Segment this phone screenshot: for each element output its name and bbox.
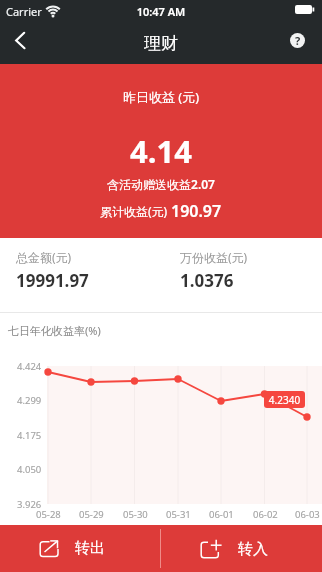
button[interactable] bbox=[0, 22, 44, 64]
staticText: 4.2340 bbox=[264, 393, 305, 407]
staticText: 昨日收益 (元) bbox=[0, 88, 322, 106]
staticText: ? bbox=[295, 33, 301, 48]
staticText: 4.14 bbox=[0, 130, 322, 172]
staticText: 1.0376 bbox=[180, 269, 234, 292]
staticText: 累计收益(元) bbox=[100, 203, 171, 219]
staticText: 10:47 AM bbox=[0, 4, 322, 19]
staticText: 总金额(元) bbox=[16, 249, 72, 265]
staticText: 190.97 bbox=[171, 200, 222, 222]
staticText: 转入 bbox=[238, 540, 268, 559]
staticText: 理财 bbox=[0, 33, 322, 54]
staticText: 4.424 bbox=[17, 360, 42, 373]
button[interactable]: ? bbox=[290, 33, 305, 48]
staticText: 06-02 bbox=[253, 508, 278, 521]
staticText: 转出 bbox=[75, 539, 105, 558]
staticText: 05-29 bbox=[79, 508, 104, 521]
staticText: Carrier bbox=[6, 4, 42, 19]
staticText: 4.050 bbox=[17, 463, 42, 476]
staticText: 05-28 bbox=[36, 508, 61, 521]
button[interactable]: 转入 bbox=[161, 525, 322, 572]
staticText: 19991.97 bbox=[16, 269, 89, 292]
staticText: 4.299 bbox=[17, 394, 42, 407]
button[interactable]: 转出 bbox=[0, 525, 160, 572]
staticText: 4.175 bbox=[17, 429, 42, 442]
staticText: 05-31 bbox=[166, 508, 191, 521]
staticText: 3.926 bbox=[17, 498, 42, 511]
staticText: 七日年化收益率(%) bbox=[8, 323, 101, 338]
staticText: 05-30 bbox=[123, 508, 148, 521]
staticText: 含活动赠送收益2.07 bbox=[0, 176, 322, 192]
staticText: 06-01 bbox=[209, 508, 234, 521]
staticText: 万份收益(元) bbox=[180, 249, 248, 265]
staticText: 06-03 bbox=[295, 508, 320, 521]
